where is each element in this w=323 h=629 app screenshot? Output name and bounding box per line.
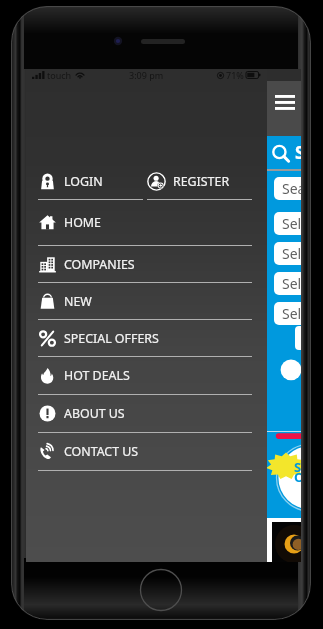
button[interactable]: Select (274, 242, 301, 265)
button[interactable]: Select (274, 212, 301, 235)
staticText: CONTACT US (64, 443, 139, 460)
button[interactable]: REGISTER (147, 163, 252, 200)
staticText: S (294, 458, 301, 476)
staticText: COMPANIES (64, 256, 135, 273)
staticText: SPECIAL OFFERS (64, 330, 159, 347)
button[interactable]: HOT DEALS (38, 357, 252, 395)
staticText: REGISTER (173, 173, 230, 190)
staticText: O (294, 468, 301, 486)
button[interactable]: SPECIAL OFFERS (38, 320, 252, 357)
button[interactable]: Select (274, 302, 301, 325)
staticText: Select (282, 304, 301, 323)
button[interactable]: CONTACT US (38, 433, 252, 471)
button[interactable]: Search (274, 177, 301, 200)
button[interactable]: Open navigation menu (275, 95, 295, 111)
button[interactable]: ABOUT US (38, 395, 252, 433)
staticText: 3:09 pm (129, 69, 164, 81)
button[interactable]: HOME (38, 200, 252, 246)
staticText: ABOUT US (64, 405, 125, 422)
button[interactable]: NEW (38, 283, 252, 320)
staticText: Select (282, 244, 301, 263)
staticText: Search (295, 141, 301, 164)
button[interactable]: COMPANIES (38, 246, 252, 283)
staticText: Search (282, 179, 301, 198)
staticText: Select (282, 214, 301, 233)
staticText: HOME (64, 214, 101, 231)
staticText: touch (47, 69, 72, 81)
staticText: LOGIN (64, 173, 103, 190)
button[interactable]: LOGIN (38, 163, 143, 200)
staticText: HOT DEALS (64, 367, 130, 384)
staticText: Select (282, 274, 301, 293)
button[interactable] (295, 326, 301, 350)
button[interactable]: Select (274, 272, 301, 295)
staticText: 71% (226, 69, 244, 81)
staticText: NEW (64, 293, 92, 310)
